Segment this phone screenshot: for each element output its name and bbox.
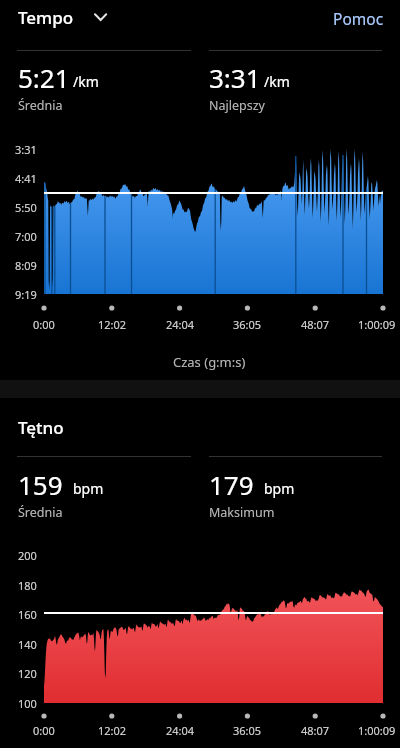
button[interactable]: Tempo bbox=[10, 3, 116, 32]
staticText: Średnia bbox=[18, 504, 63, 521]
staticText: 36:05 bbox=[233, 723, 262, 738]
staticText: 3:31 bbox=[15, 142, 37, 157]
staticText: 1:00:09 bbox=[358, 317, 396, 332]
staticText: 12:02 bbox=[98, 723, 127, 738]
button[interactable]: Tętno bbox=[10, 413, 72, 442]
staticText: 140 bbox=[18, 637, 37, 652]
staticText: 180 bbox=[18, 578, 37, 593]
staticText: 0:00 bbox=[33, 317, 55, 332]
staticText: 0:00 bbox=[33, 723, 55, 738]
staticText: 5:50 bbox=[15, 200, 37, 215]
staticText: Tempo bbox=[18, 6, 74, 29]
staticText: bpm bbox=[264, 479, 295, 498]
staticText: 4:41 bbox=[15, 171, 37, 186]
staticText: 120 bbox=[18, 666, 37, 681]
staticText: 9:19 bbox=[15, 287, 37, 302]
staticText: 48:07 bbox=[301, 317, 330, 332]
staticText: /km bbox=[264, 72, 290, 91]
staticText: 36:05 bbox=[233, 317, 262, 332]
staticText: Tętno bbox=[18, 416, 64, 439]
staticText: Czas (g:m:s) bbox=[173, 353, 246, 371]
staticText: 8:09 bbox=[15, 258, 37, 273]
staticText: 179 bbox=[209, 467, 254, 502]
staticText: Średnia bbox=[18, 97, 63, 114]
staticText: bpm bbox=[73, 479, 104, 498]
staticText: 1:00:09 bbox=[358, 723, 396, 738]
staticText: Maksimum bbox=[209, 504, 275, 521]
staticText: 100 bbox=[18, 696, 37, 711]
staticText: 12:02 bbox=[98, 317, 127, 332]
staticText: Pomoc bbox=[333, 8, 384, 29]
staticText: 5:21 bbox=[18, 60, 70, 95]
button[interactable]: Pomoc bbox=[319, 3, 398, 34]
staticText: 7:00 bbox=[15, 229, 37, 244]
staticText: 3:31 bbox=[209, 60, 261, 95]
staticText: 200 bbox=[18, 548, 37, 563]
staticText: 159 bbox=[18, 467, 63, 502]
staticText: Najlepszy bbox=[209, 97, 265, 114]
staticText: 48:07 bbox=[301, 723, 330, 738]
staticText: /km bbox=[73, 72, 99, 91]
staticText: 160 bbox=[18, 607, 37, 622]
staticText: 24:04 bbox=[166, 723, 195, 738]
staticText: 24:04 bbox=[166, 317, 195, 332]
